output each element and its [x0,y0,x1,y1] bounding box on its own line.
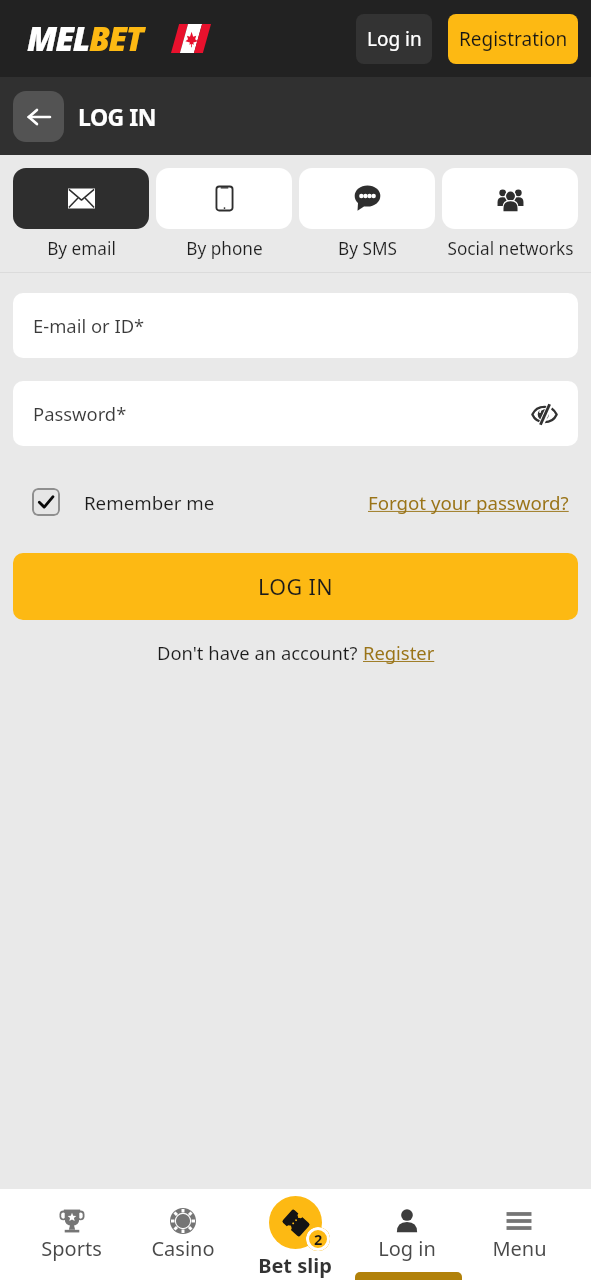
staticText: Log in [367,26,422,52]
staticText: Password* [33,401,127,426]
staticText: MEL [27,16,89,61]
button[interactable]: E-mail or ID* [13,293,578,358]
staticText: Menu [492,1235,547,1262]
button[interactable]: Remember me [32,488,215,516]
staticText: Bet slip [258,1252,332,1279]
button[interactable]: Register [363,640,435,665]
button[interactable]: By email [13,168,149,260]
button[interactable]: By phone [156,168,292,260]
staticText: Don't have an account? [157,640,363,665]
button[interactable]: By SMS [299,168,435,260]
button[interactable]: Back [13,91,64,142]
button[interactable]: Sports [16,1189,127,1280]
staticText: By SMS [338,237,397,260]
button[interactable]: Social networks [442,168,578,260]
staticText: LOG IN [78,101,156,132]
staticText: Registration [459,26,568,52]
button[interactable]: Menu [463,1189,575,1280]
staticText: Forgot your password? [368,490,569,515]
staticText: Casino [151,1235,215,1262]
staticText: By phone [186,237,263,260]
button[interactable]: Log in [351,1189,463,1280]
staticText: Sports [41,1235,102,1262]
staticText: E-mail or ID* [33,313,145,338]
button[interactable]: LOG IN [13,553,578,620]
button[interactable]: Show password [527,397,561,431]
staticText: Social networks [447,237,574,260]
staticText: Log in [378,1235,436,1262]
button[interactable]: Forgot your password? [368,490,569,515]
button[interactable]: Registration [448,14,578,64]
button[interactable]: 2 [239,1189,351,1280]
staticText: BET [89,16,143,61]
button[interactable]: Password* [13,381,578,446]
button[interactable]: Casino [127,1189,239,1280]
staticText: Register [363,640,435,665]
staticText: Remember me [84,490,215,515]
button[interactable]: Log in [356,14,432,64]
staticText: By email [47,237,116,260]
staticText: LOG IN [258,572,333,601]
staticText: 2 [314,1229,323,1249]
